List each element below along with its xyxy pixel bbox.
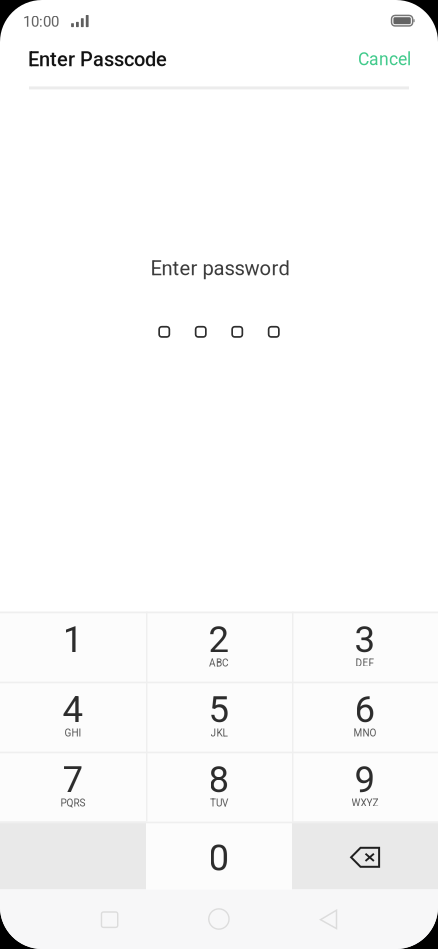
staticText: 7 (62, 758, 83, 801)
staticText: 4 (62, 688, 83, 731)
staticText: DEF (355, 657, 374, 669)
button[interactable]: 6 (292, 681, 438, 751)
staticText: 3 (354, 618, 375, 661)
button[interactable]: 7 (0, 751, 146, 821)
staticText: ABC (209, 657, 229, 669)
staticText: GHI (64, 727, 81, 739)
staticText: MNO (353, 727, 376, 739)
staticText: Enter password (150, 257, 289, 280)
staticText: 1 (62, 618, 83, 661)
staticText: 6 (354, 688, 375, 731)
button[interactable]: Recent apps (82, 898, 138, 942)
button[interactable]: 9 (292, 751, 438, 821)
staticText: 5 (208, 688, 229, 731)
staticText: 0 (208, 837, 229, 879)
staticText: 2 (208, 618, 229, 661)
staticText: Enter Passcode (28, 48, 167, 71)
button[interactable]: 3 (292, 611, 438, 681)
button[interactable]: 1 (0, 611, 146, 681)
button[interactable]: 8 (146, 751, 292, 821)
button[interactable]: Delete (292, 821, 438, 889)
staticText: PQRS (60, 797, 85, 809)
staticText: JKL (210, 727, 227, 739)
staticText: 10:00 (23, 13, 59, 30)
staticText: Cancel (358, 49, 411, 69)
button[interactable]: 5 (146, 681, 292, 751)
button[interactable]: Cancel (339, 42, 411, 76)
button[interactable]: 4 (0, 681, 146, 751)
button[interactable]: 2 (146, 611, 292, 681)
button[interactable]: 0 (146, 821, 292, 889)
staticText: 9 (354, 758, 375, 801)
staticText: 8 (208, 758, 229, 801)
staticText: TUV (210, 797, 228, 809)
staticText: WXYZ (351, 797, 378, 809)
button[interactable]: Home (191, 897, 247, 941)
button[interactable]: Back (300, 897, 356, 941)
